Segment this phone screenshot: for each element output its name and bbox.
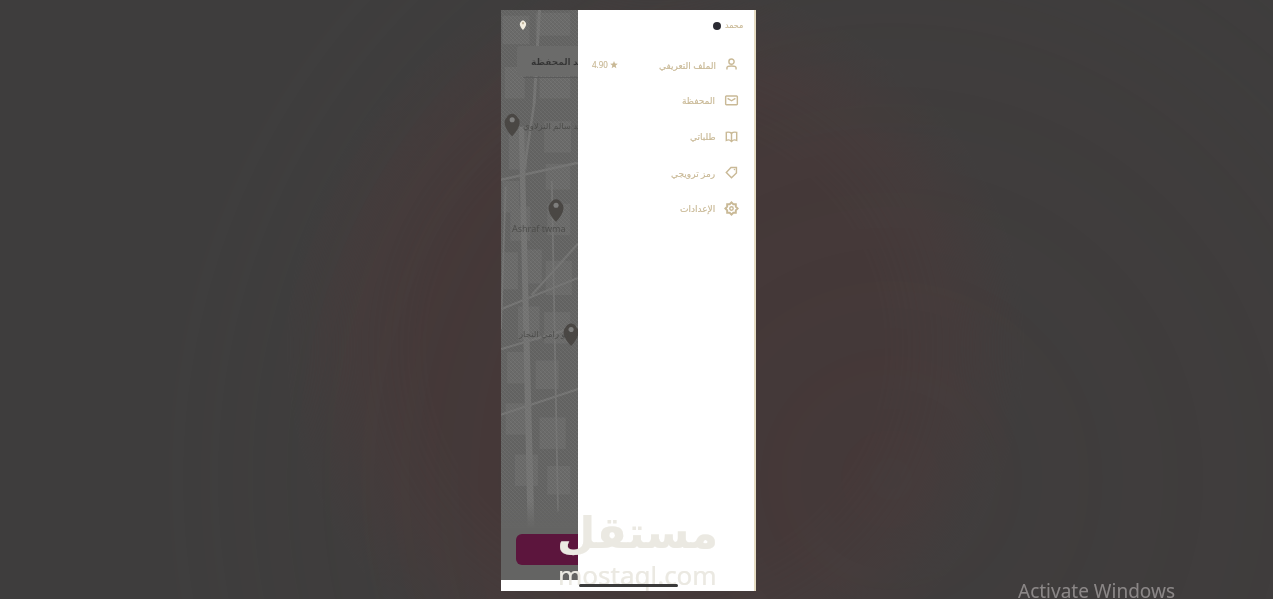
staticText: mostaql.com: [558, 557, 717, 592]
button[interactable]: الملف التعريفي: [578, 46, 755, 82]
button[interactable]: طلباتي: [578, 118, 755, 154]
button[interactable]: Current location: [517, 18, 529, 30]
staticText: حمد سالم النزلاوي: [523, 120, 578, 132]
staticText: 4.90: [592, 59, 608, 70]
staticText: مستقل: [557, 507, 718, 558]
staticText: محمد: [725, 21, 744, 30]
button[interactable]: الإعدادات: [578, 190, 755, 226]
staticText: الإعدادات: [680, 204, 716, 214]
staticText: Activate Windows: [1018, 578, 1175, 599]
staticText: المحفظة: [682, 96, 716, 106]
button[interactable]: المحفظة: [578, 82, 755, 118]
button[interactable]: Order now: [516, 534, 578, 565]
button[interactable]: محمد: [713, 21, 744, 30]
staticText: رمز ترويجي: [671, 167, 716, 179]
button[interactable]: يد المحفظة: [517, 46, 578, 76]
staticText: Ashraf twma: [512, 222, 566, 234]
button[interactable]: رمز ترويجي: [578, 154, 755, 190]
staticText: ابو رامي النجار: [519, 328, 571, 340]
staticText: طلباتي: [690, 132, 716, 142]
staticText: الملف التعريفي: [659, 59, 716, 71]
staticText: يد المحفظة: [531, 55, 578, 67]
